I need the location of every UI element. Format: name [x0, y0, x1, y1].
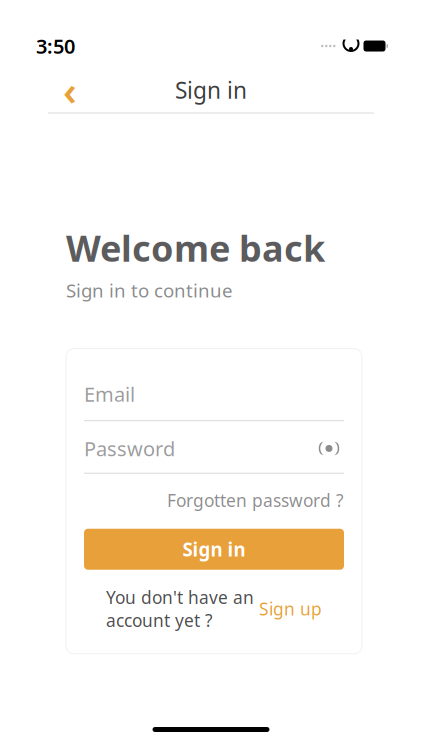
- button[interactable]: Sign in: [84, 529, 344, 570]
- staticText: ‹: [63, 63, 77, 116]
- staticText: Sign up: [254, 597, 322, 620]
- button[interactable]: Back: [48, 70, 92, 110]
- staticText: Sign in: [175, 75, 247, 105]
- staticText: 3:50: [36, 33, 75, 59]
- staticText: Password: [84, 435, 175, 462]
- staticText: Welcome back: [66, 224, 325, 272]
- staticText: Email: [84, 381, 135, 407]
- button[interactable]: Sign up: [254, 597, 322, 620]
- staticText: Sign in to continue: [66, 278, 233, 303]
- staticText: You don't have an account yet ?: [106, 586, 254, 632]
- staticText: Forgotten password ?: [167, 489, 344, 512]
- button[interactable]: Forgotten password ?: [167, 489, 344, 512]
- staticText: Sign in: [182, 537, 245, 562]
- button[interactable]: Show password: [314, 437, 344, 459]
